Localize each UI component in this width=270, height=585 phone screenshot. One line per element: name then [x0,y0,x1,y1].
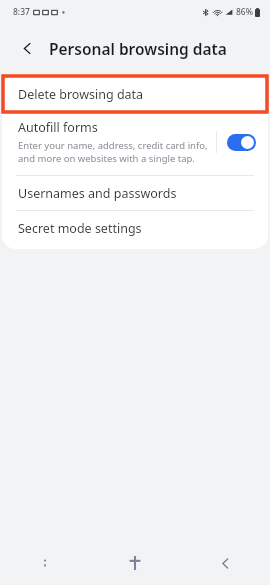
button[interactable]: Delete browsing data [2,75,268,113]
button[interactable]: Home [90,541,180,585]
staticText: Secret mode settings [18,220,142,237]
staticText: 8:37 [13,6,30,18]
button[interactable]: Recents [0,541,90,585]
staticText: Autofill forms [18,119,98,136]
staticText: Delete browsing data [18,86,144,103]
staticText: 86% [236,6,253,18]
button[interactable]: Back [14,35,40,61]
button[interactable]: Usernames and passwords [2,176,268,210]
button[interactable]: Autofill forms [2,113,268,175]
button[interactable]: Autofill forms toggle [227,134,256,151]
button[interactable]: Secret mode settings [2,211,268,245]
staticText: Usernames and passwords [18,185,177,202]
button[interactable]: Back [180,541,270,585]
staticText: Personal browsing data [49,38,227,59]
staticText: Enter your name, address, credit card in… [18,139,208,165]
